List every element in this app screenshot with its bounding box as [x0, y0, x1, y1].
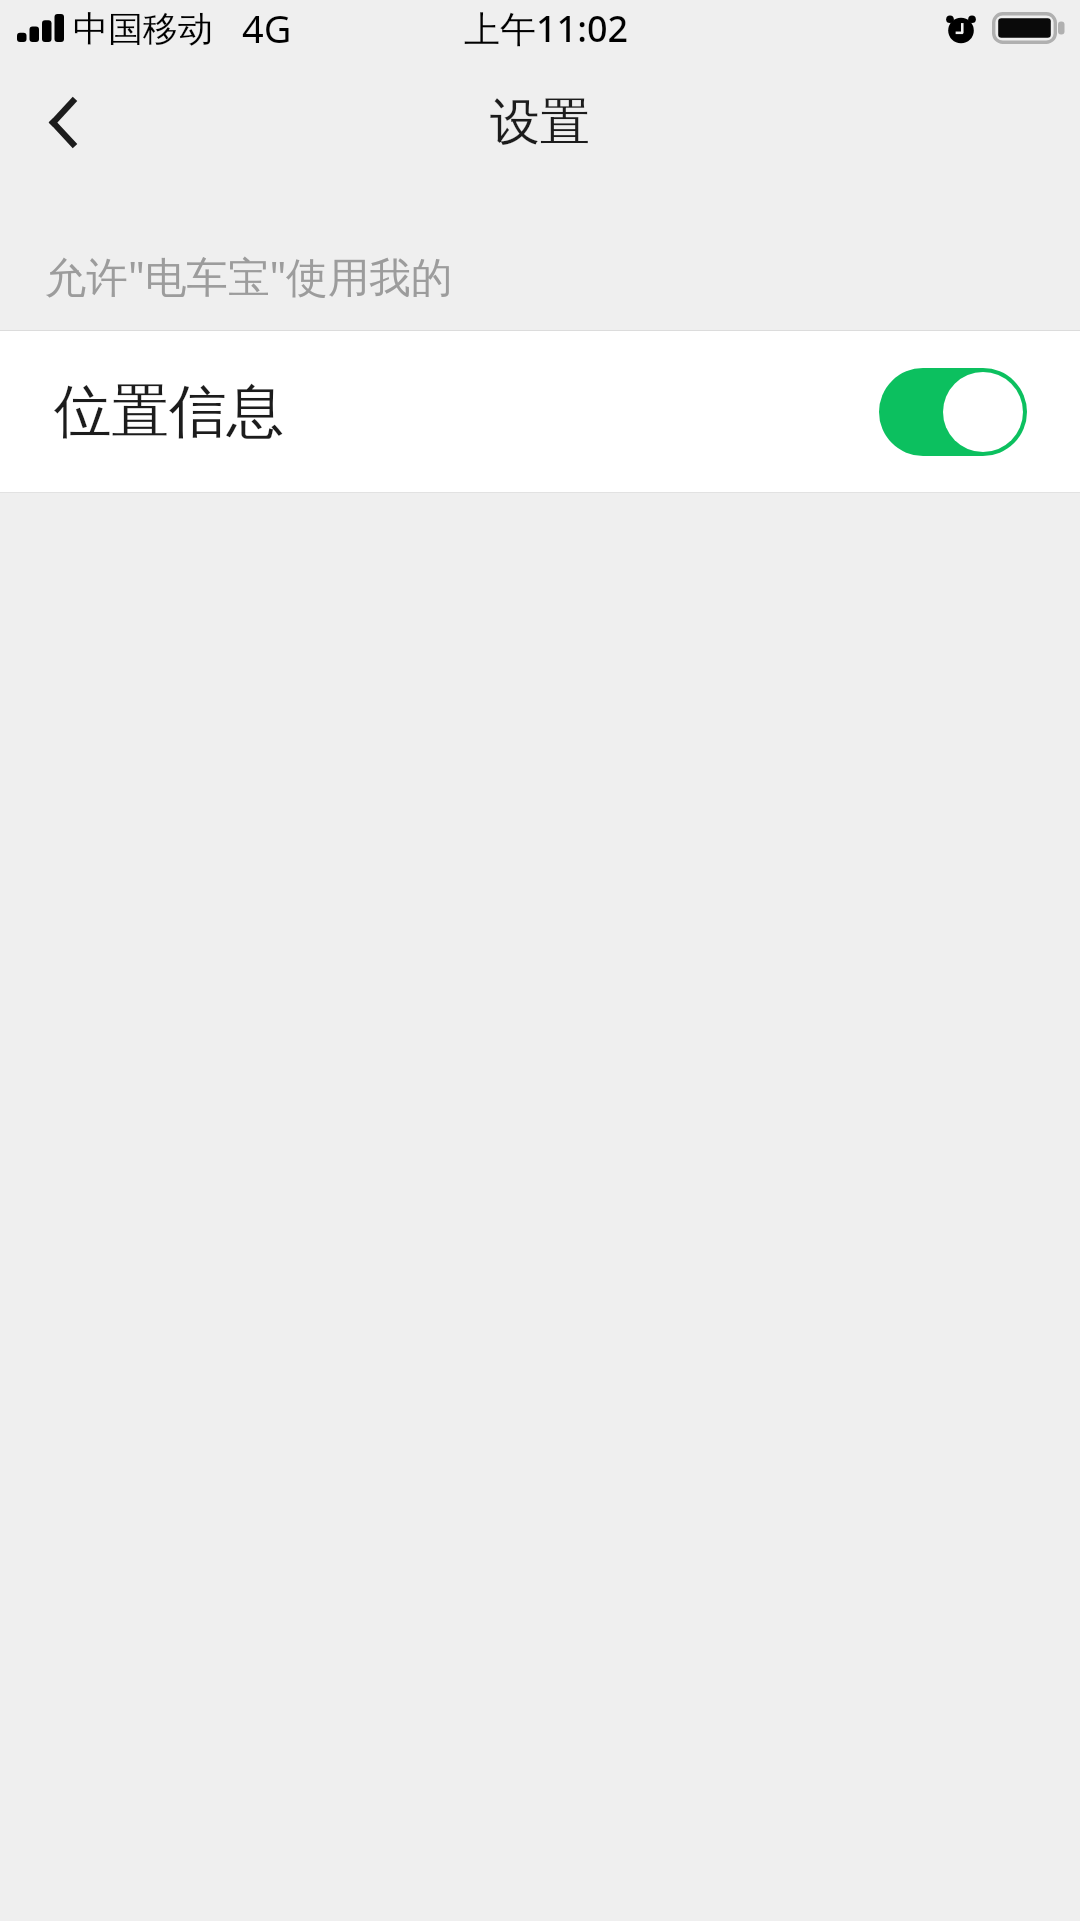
staticText: 4G: [242, 2, 292, 54]
staticText: 位置信息: [54, 376, 284, 448]
staticText: 允许"电车宝"使用我的: [45, 248, 453, 304]
other: 闹钟: [944, 12, 978, 46]
button[interactable]: 返回: [15, 74, 111, 170]
button[interactable]: 位置信息开关: [879, 368, 1027, 456]
staticText: 中国移动: [73, 7, 213, 51]
staticText: 设置: [490, 91, 590, 154]
staticText: 上午11:02: [464, 4, 629, 53]
button[interactable]: 位置信息: [0, 331, 1080, 492]
